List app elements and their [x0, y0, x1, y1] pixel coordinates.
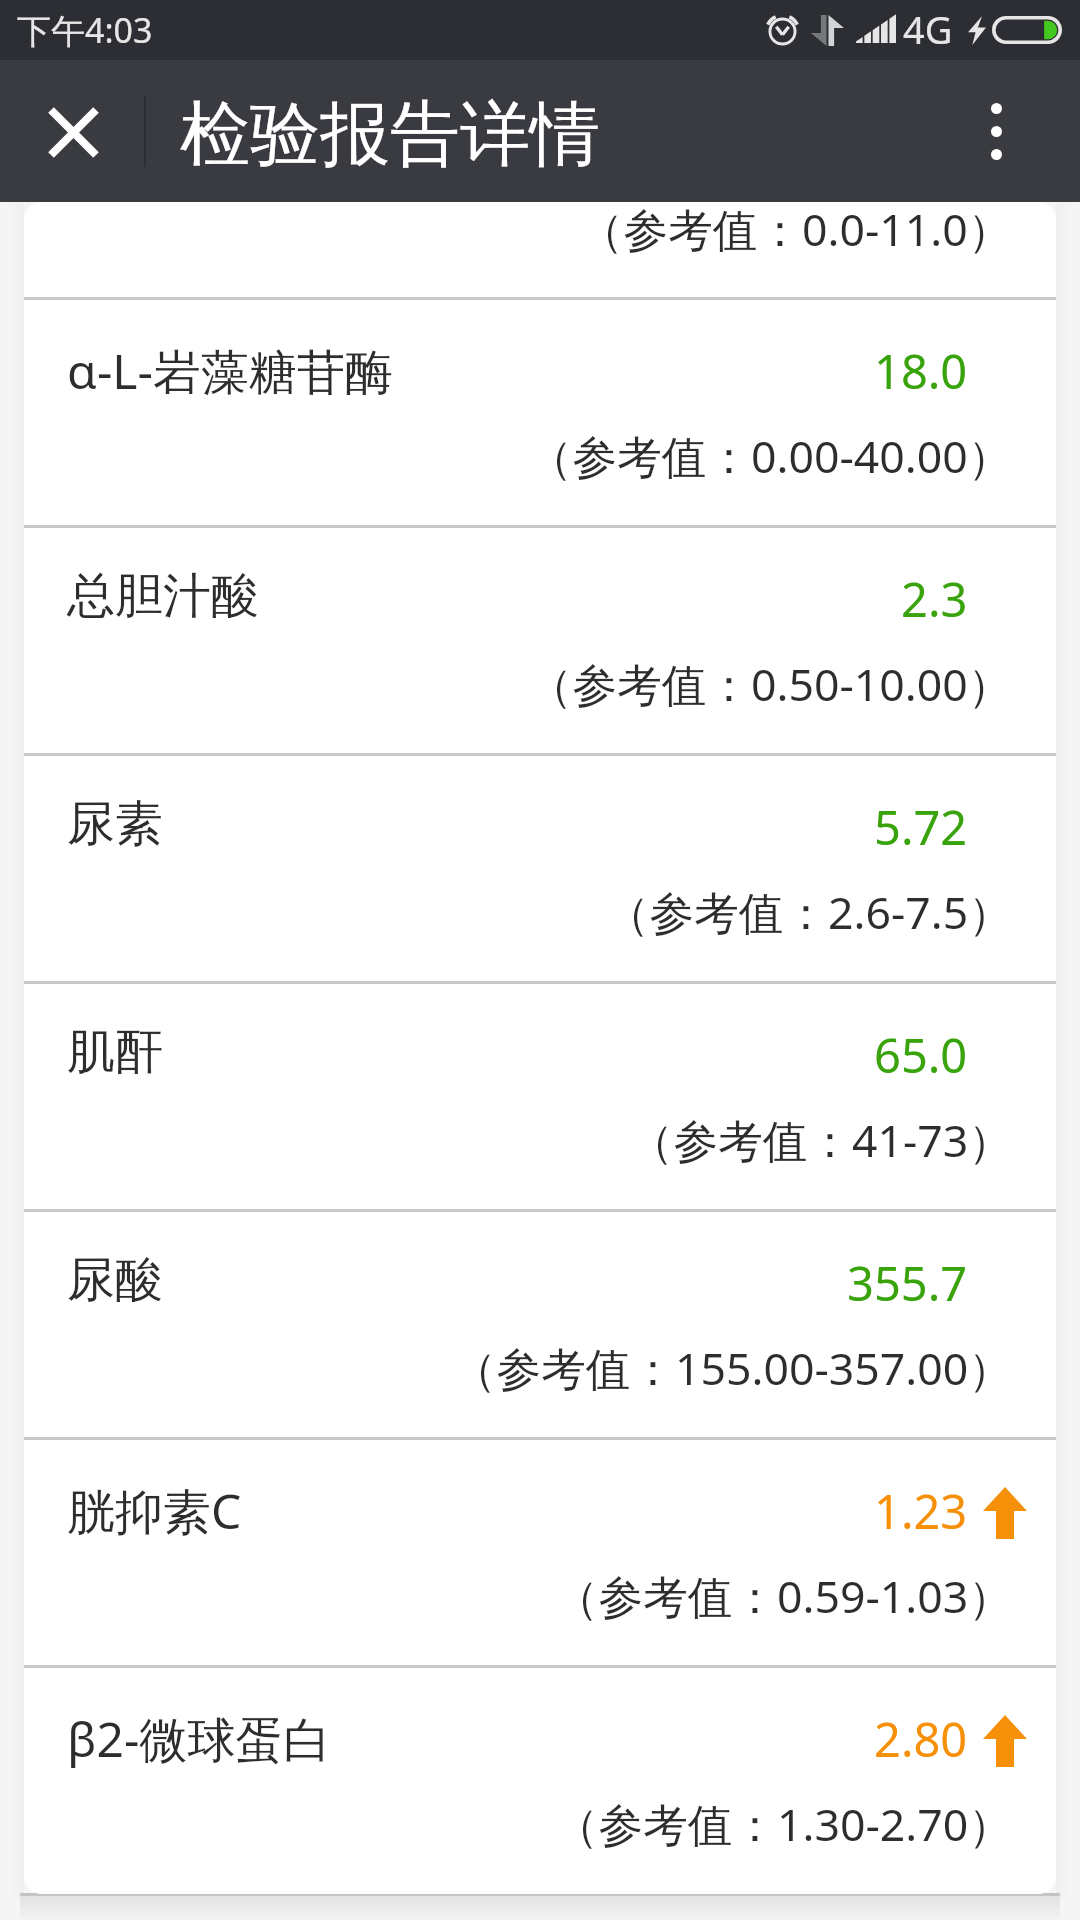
- staticText: β2-微球蛋白: [67, 1706, 332, 1772]
- button[interactable]: 总胆汁酸: [24, 528, 1056, 753]
- staticText: α-L-岩藻糖苷酶: [67, 338, 393, 404]
- button[interactable]: 尿素: [24, 756, 1056, 981]
- button[interactable]: 胱抑素C: [24, 1440, 1056, 1665]
- staticText: 4G: [903, 3, 953, 55]
- staticText: 胱抑素C: [67, 1478, 242, 1544]
- staticText: 65.0: [874, 1023, 968, 1087]
- button[interactable]: β2-微球蛋白: [24, 1668, 1056, 1893]
- staticText: （参考值：0.00-40.00）: [528, 425, 1013, 486]
- staticText: （参考值：0.0-11.0）: [579, 202, 1013, 259]
- button[interactable]: 肌酐: [24, 984, 1056, 1209]
- staticText: 尿素: [67, 794, 163, 854]
- button[interactable]: 尿酸: [24, 1212, 1056, 1437]
- staticText: 5.72: [874, 795, 968, 859]
- staticText: （参考值：2.6-7.5）: [605, 881, 1013, 942]
- staticText: （参考值：1.30-2.70）: [554, 1793, 1013, 1854]
- button[interactable]: Close: [24, 83, 120, 179]
- button[interactable]: More options: [948, 83, 1044, 179]
- staticText: （参考值：155.00-357.00）: [452, 1337, 1013, 1398]
- staticText: 2.3: [901, 567, 968, 631]
- staticText: 355.7: [847, 1251, 968, 1315]
- staticText: 1.23: [874, 1479, 968, 1543]
- staticText: 2.80: [874, 1707, 968, 1771]
- staticText: 肌酐: [67, 1022, 163, 1082]
- staticText: （参考值：0.59-1.03）: [554, 1565, 1013, 1626]
- staticText: 18.0: [874, 339, 968, 403]
- staticText: 总胆汁酸: [67, 566, 259, 626]
- staticText: （参考值：0.50-10.00）: [528, 653, 1013, 714]
- button[interactable]: （参考值：0.0-11.0）: [24, 202, 1056, 297]
- staticText: 检验报告详情: [180, 91, 600, 179]
- staticText: （参考值：41-73）: [629, 1109, 1013, 1170]
- staticText: 尿酸: [67, 1250, 163, 1310]
- staticText: 下午4:03: [17, 7, 153, 53]
- button[interactable]: α-L-岩藻糖苷酶: [24, 300, 1056, 525]
